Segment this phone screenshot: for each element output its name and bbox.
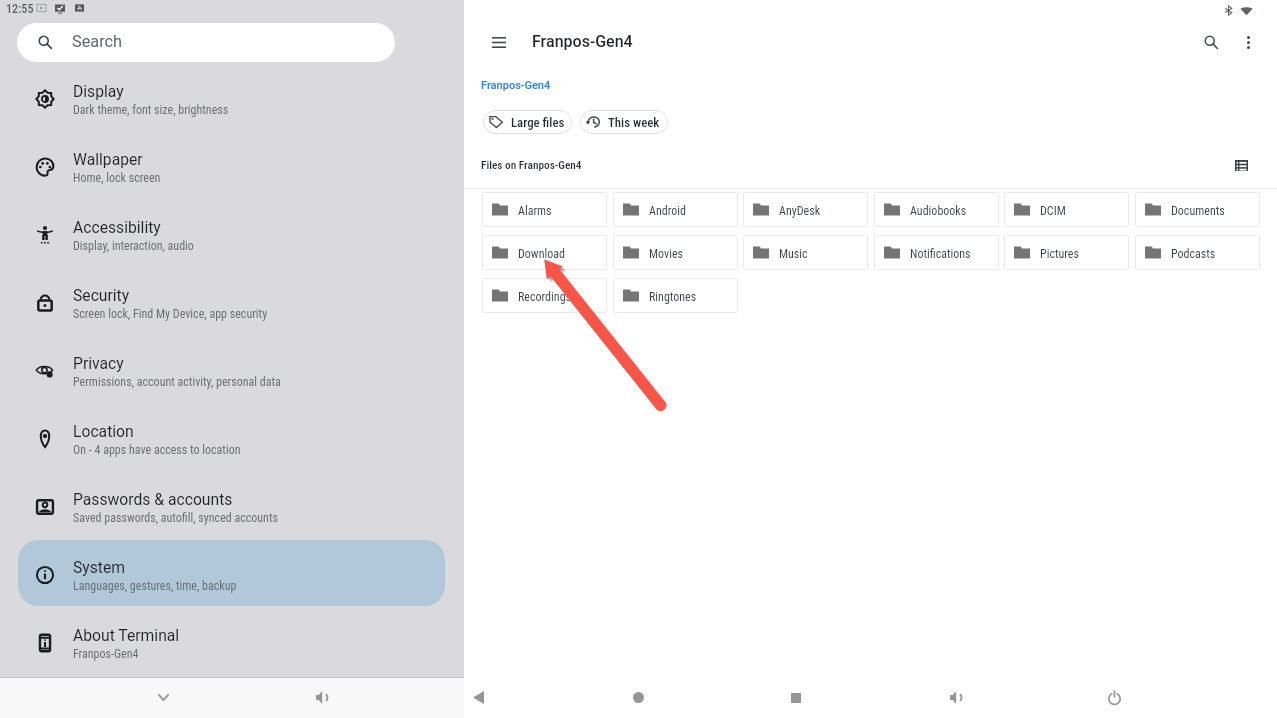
button[interactable]: Movies [613, 235, 738, 270]
staticText: Franpos-Gen4 [73, 647, 139, 661]
staticText: DCIM [1040, 204, 1066, 218]
button[interactable]: Switch to list view [1229, 153, 1253, 177]
staticText: Display [73, 82, 124, 100]
staticText: Display, interaction, audio [73, 239, 194, 253]
button[interactable]: This week [580, 110, 668, 134]
button[interactable]: Privacy [18, 336, 445, 402]
staticText: Languages, gestures, time, backup [73, 579, 237, 593]
button[interactable]: Recordings [482, 278, 607, 313]
staticText: Ringtones [649, 290, 697, 304]
staticText: Passwords & accounts [73, 490, 233, 508]
button[interactable]: Passwords & accounts [18, 472, 445, 538]
staticText: 12:55 [6, 2, 34, 16]
staticText: AnyDesk [779, 204, 821, 218]
staticText: Pictures [1040, 247, 1079, 261]
staticText: Alarms [518, 204, 552, 218]
button[interactable]: Notifications [874, 235, 999, 270]
button[interactable]: Volume [281, 677, 361, 718]
button[interactable]: DCIM [1004, 192, 1129, 227]
button[interactable]: Music [743, 235, 868, 270]
button[interactable]: Android [613, 192, 738, 227]
staticText: Movies [649, 247, 683, 261]
staticText: This week [608, 115, 660, 130]
staticText: System [73, 558, 126, 576]
button[interactable]: Back [438, 677, 518, 718]
staticText: Privacy [73, 354, 124, 372]
button[interactable]: Audiobooks [874, 192, 999, 227]
button[interactable]: Documents [1135, 192, 1260, 227]
staticText: Music [779, 247, 808, 261]
button[interactable]: Hide keyboard [123, 677, 203, 718]
staticText: Audiobooks [910, 204, 967, 218]
button[interactable]: Large files [483, 110, 572, 134]
button[interactable]: Alarms [482, 192, 607, 227]
button[interactable]: Home [598, 677, 678, 718]
staticText: Franpos-Gen4 [481, 79, 551, 92]
staticText: Franpos-Gen4 [532, 32, 633, 51]
staticText: Permissions, account activity, personal … [73, 375, 281, 389]
button[interactable]: Podcasts [1135, 235, 1260, 270]
button[interactable]: Accessibility [18, 200, 445, 266]
button[interactable]: Download [482, 235, 607, 270]
button[interactable]: About Terminal [18, 608, 445, 674]
staticText: On - 4 apps have access to location [73, 443, 241, 457]
staticText: Dark theme, font size, brightness [73, 103, 229, 117]
staticText: Files on Franpos-Gen4 [481, 159, 582, 172]
button[interactable]: Security [18, 268, 445, 334]
button[interactable]: Volume up [915, 677, 995, 718]
staticText: Large files [511, 115, 565, 130]
staticText: About Terminal [73, 626, 180, 644]
button[interactable]: System [18, 540, 445, 606]
staticText: Recordings [518, 290, 572, 304]
staticText: Home, lock screen [73, 171, 161, 185]
staticText: Notifications [910, 247, 971, 261]
button[interactable]: Location [18, 404, 445, 470]
staticText: Documents [1171, 204, 1225, 218]
button[interactable]: Search [17, 23, 395, 62]
button[interactable]: More options [1231, 25, 1265, 59]
button[interactable]: Recents [756, 677, 836, 718]
staticText: Security [73, 286, 130, 304]
button[interactable]: Franpos-Gen4 [481, 79, 551, 92]
button[interactable]: Menu [482, 25, 516, 59]
staticText: Android [649, 204, 686, 218]
staticText: Podcasts [1171, 247, 1216, 261]
button[interactable]: Pictures [1004, 235, 1129, 270]
button[interactable]: Ringtones [613, 278, 738, 313]
staticText: Search [72, 32, 123, 51]
staticText: Location [73, 422, 134, 440]
button[interactable]: Wallpaper [18, 132, 445, 198]
staticText: Wallpaper [73, 150, 143, 168]
button[interactable]: AnyDesk [743, 192, 868, 227]
staticText: Download [518, 247, 565, 261]
staticText: Saved passwords, autofill, synced accoun… [73, 511, 278, 525]
button[interactable]: Power [1074, 677, 1154, 718]
button[interactable]: Search [1194, 25, 1228, 59]
staticText: Accessibility [73, 218, 161, 236]
button[interactable]: Display [18, 64, 445, 130]
staticText: Screen lock, Find My Device, app securit… [73, 307, 268, 321]
